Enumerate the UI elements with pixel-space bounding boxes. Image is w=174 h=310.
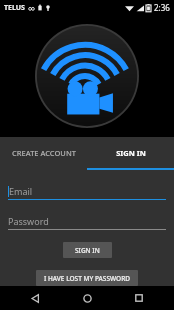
staticText: SIGN IN bbox=[116, 148, 146, 158]
staticText: SIGN IN bbox=[75, 246, 100, 255]
button[interactable]: Email bbox=[8, 182, 166, 199]
button[interactable]: I HAVE LOST MY PASSWORD bbox=[36, 270, 138, 286]
button[interactable]: Recent apps bbox=[122, 286, 156, 310]
staticText: 2:36 bbox=[154, 2, 170, 13]
staticText: Password bbox=[8, 215, 49, 227]
button[interactable]: Home bbox=[70, 286, 104, 310]
staticText: TELUS bbox=[4, 3, 25, 13]
staticText: I HAVE LOST MY PASSWORD bbox=[44, 274, 131, 283]
staticText: Email bbox=[9, 185, 33, 197]
button[interactable]: SIGN IN bbox=[87, 137, 174, 168]
staticText: CREATE ACCOUNT bbox=[12, 148, 76, 158]
button[interactable]: CREATE ACCOUNT bbox=[0, 137, 87, 168]
button[interactable]: SIGN IN bbox=[63, 242, 112, 258]
button[interactable]: Back bbox=[18, 286, 52, 310]
button[interactable]: Password bbox=[8, 212, 166, 229]
